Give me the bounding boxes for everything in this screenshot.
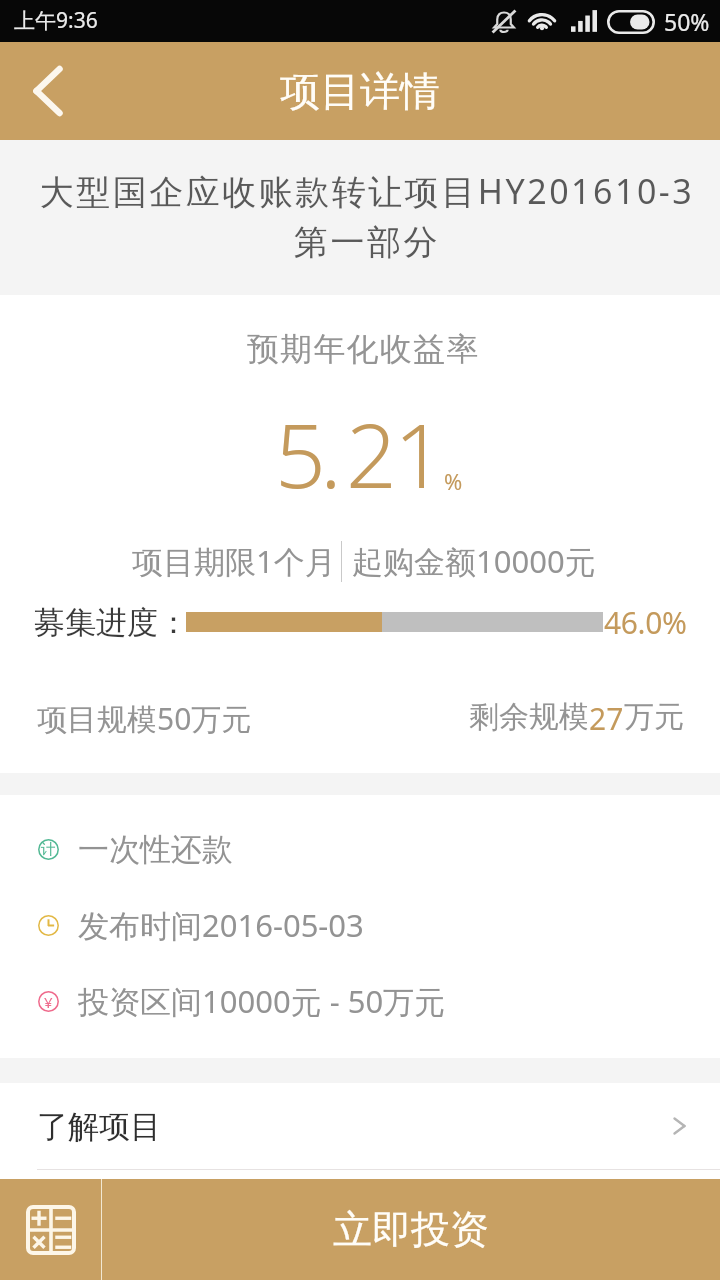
staticText: 上午9:36 bbox=[14, 6, 98, 35]
staticText: 50% bbox=[664, 6, 710, 37]
staticText: 预期年化收益率 bbox=[247, 329, 480, 369]
staticText: 项目规模50万元 bbox=[37, 698, 252, 739]
staticText: 46.0% bbox=[604, 602, 687, 643]
staticText: 一次性还款 bbox=[78, 830, 233, 869]
staticText: 发布时间2016-05-03 bbox=[78, 904, 364, 946]
staticText: 项目期限1个月 bbox=[132, 540, 336, 582]
staticText: 2 bbox=[346, 393, 397, 514]
button[interactable]: Back bbox=[0, 42, 96, 140]
staticText: 27 bbox=[589, 698, 624, 739]
staticText: 了解项目 bbox=[37, 1107, 161, 1146]
button[interactable]: 发布时间2016-05-03 bbox=[0, 887, 720, 963]
staticText: . bbox=[320, 393, 342, 514]
button[interactable]: 计 bbox=[0, 811, 720, 887]
button[interactable]: 了解项目 bbox=[0, 1083, 720, 1169]
staticText: 立即投资 bbox=[333, 1205, 489, 1254]
staticText: 大型国企应收账款转让项目HY201610-3 第一部分 bbox=[7, 168, 720, 264]
button[interactable]: Calculator bbox=[0, 1179, 101, 1280]
staticText: 剩余规模 bbox=[469, 698, 589, 736]
staticText: 5 bbox=[275, 393, 326, 514]
staticText: 募集进度： bbox=[34, 603, 189, 642]
staticText: 1 bbox=[394, 393, 445, 514]
staticText: 投资区间10000元 - 50万元 bbox=[78, 980, 446, 1022]
staticText: 起购金额10000元 bbox=[352, 540, 596, 582]
button[interactable]: ¥ bbox=[0, 963, 720, 1039]
button[interactable]: 立即投资 bbox=[102, 1179, 720, 1280]
staticText: % bbox=[444, 466, 463, 496]
staticText: 计 bbox=[41, 840, 56, 859]
staticText: ¥ bbox=[44, 992, 53, 1012]
staticText: 项目详情 bbox=[280, 66, 440, 116]
staticText: 万元 bbox=[624, 698, 684, 736]
